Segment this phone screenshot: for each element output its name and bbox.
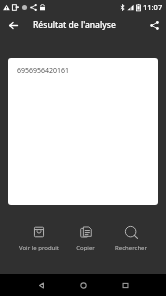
staticText: Résultat de l'analyse [33,19,116,31]
button[interactable]: Applications récentes [104,274,146,296]
button[interactable]: Copier [63,226,108,252]
staticText: Rechercher [115,244,147,252]
staticText: 11:07 [143,2,163,12]
button[interactable]: Partager [142,14,166,36]
staticText: Voir le produit [19,244,59,252]
staticText: 6956956420161 [17,66,70,76]
button[interactable]: Voir le produit [15,226,62,252]
staticText: Copier [76,244,95,252]
button[interactable]: Retour [0,14,26,36]
button[interactable]: Accueil [62,274,104,296]
button[interactable]: Retour [20,274,62,296]
button[interactable]: Rechercher [108,226,153,252]
